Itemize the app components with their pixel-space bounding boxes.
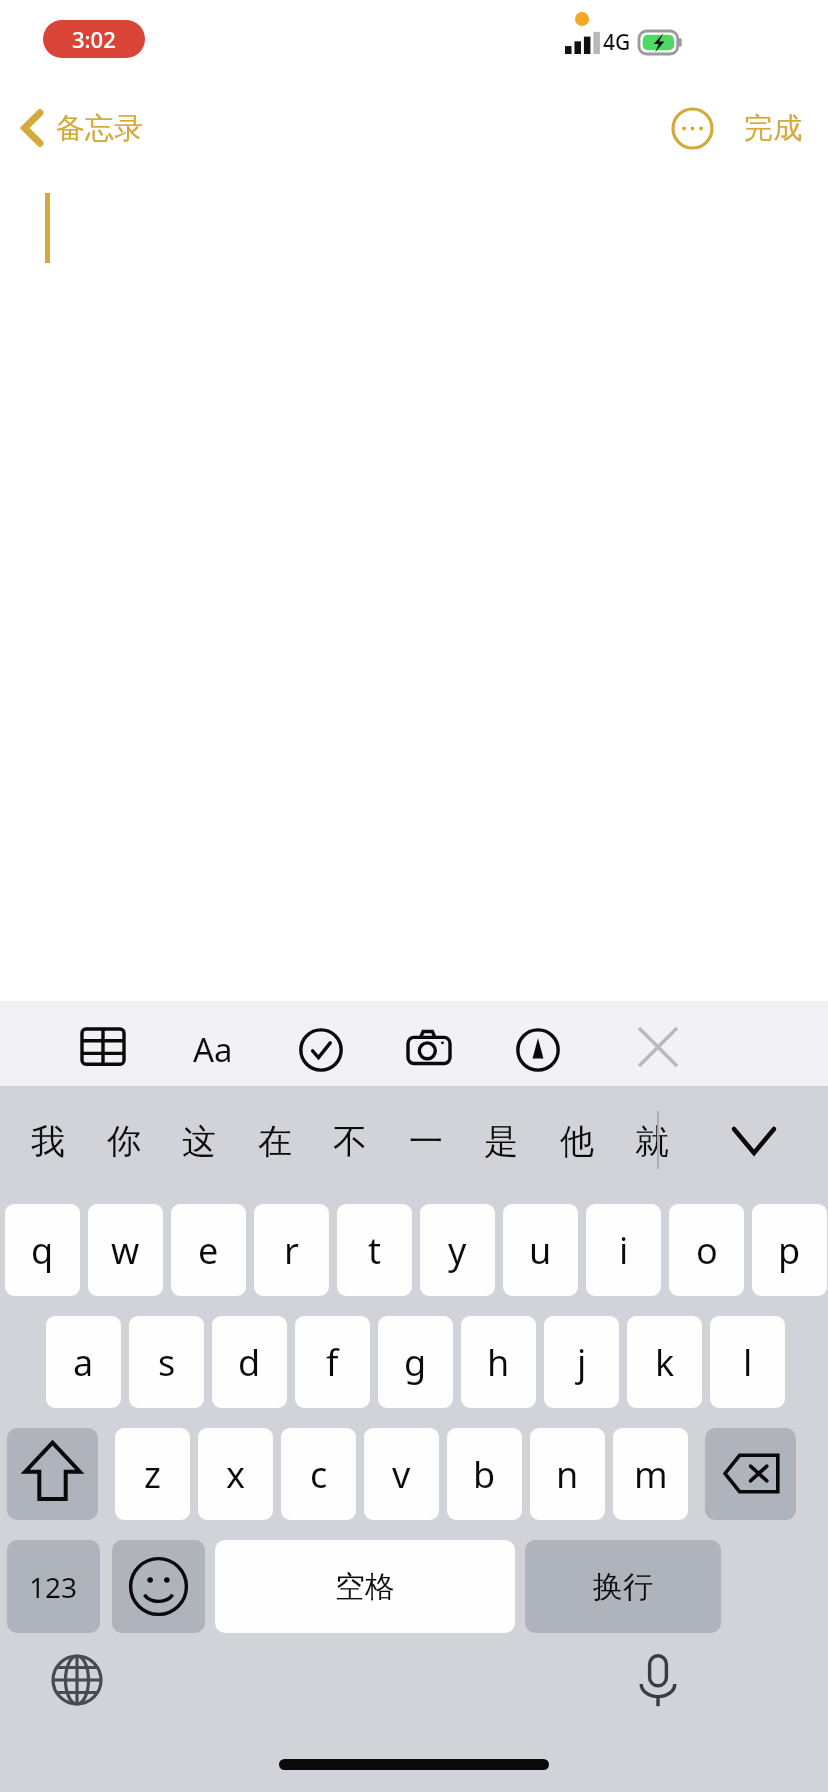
- button[interactable]: 在: [237, 1086, 313, 1196]
- staticText: u: [529, 1226, 552, 1275]
- button[interactable]: o: [669, 1204, 744, 1296]
- staticText: y: [448, 1226, 467, 1275]
- staticText: Aa: [193, 1027, 233, 1072]
- button[interactable]: m: [613, 1428, 688, 1520]
- staticText: o: [696, 1226, 718, 1275]
- staticText: 123: [29, 1568, 78, 1606]
- staticText: w: [111, 1226, 140, 1275]
- button[interactable]: a: [46, 1316, 121, 1408]
- staticText: l: [743, 1338, 753, 1387]
- button[interactable]: 你: [86, 1086, 162, 1196]
- button[interactable]: 就: [614, 1086, 690, 1196]
- staticText: 这: [182, 1120, 216, 1163]
- button[interactable]: y: [420, 1204, 495, 1296]
- button[interactable]: 123: [7, 1540, 100, 1633]
- button[interactable]: Shift: [7, 1428, 98, 1520]
- staticText: g: [404, 1338, 427, 1387]
- staticText: m: [634, 1450, 668, 1499]
- button[interactable]: Table: [75, 1022, 131, 1078]
- button[interactable]: Close keyboard: [632, 1021, 684, 1073]
- button[interactable]: 我: [10, 1086, 86, 1196]
- staticText: q: [31, 1226, 54, 1275]
- staticText: k: [655, 1338, 675, 1387]
- button[interactable]: Markup: [510, 1022, 566, 1078]
- staticText: t: [368, 1226, 381, 1275]
- button[interactable]: i: [586, 1204, 661, 1296]
- staticText: 空格: [335, 1568, 395, 1606]
- staticText: v: [392, 1450, 411, 1499]
- button[interactable]: Dictation: [620, 1643, 696, 1719]
- button[interactable]: v: [364, 1428, 439, 1520]
- button[interactable]: g: [378, 1316, 453, 1408]
- button[interactable]: 一: [388, 1086, 464, 1196]
- button[interactable]: q: [5, 1204, 80, 1296]
- button[interactable]: 备忘录: [14, 101, 151, 155]
- staticText: h: [487, 1338, 510, 1387]
- button[interactable]: 是: [463, 1086, 539, 1196]
- button[interactable]: Switch keyboard: [48, 1651, 106, 1709]
- staticText: f: [326, 1338, 339, 1387]
- button[interactable]: x: [198, 1428, 273, 1520]
- staticText: z: [144, 1450, 161, 1499]
- button[interactable]: Camera: [401, 1022, 457, 1078]
- staticText: c: [310, 1450, 328, 1499]
- staticText: 不: [333, 1120, 367, 1163]
- button[interactable]: 换行: [525, 1540, 721, 1633]
- staticText: 我: [31, 1120, 65, 1163]
- button[interactable]: u: [503, 1204, 578, 1296]
- staticText: b: [473, 1450, 496, 1499]
- button[interactable]: 不: [312, 1086, 388, 1196]
- staticText: x: [226, 1450, 246, 1499]
- button[interactable]: d: [212, 1316, 287, 1408]
- button[interactable]: Text format: [183, 1019, 243, 1079]
- button[interactable]: More options: [665, 101, 720, 156]
- button[interactable]: 完成: [740, 104, 806, 153]
- button[interactable]: e: [171, 1204, 246, 1296]
- button[interactable]: c: [281, 1428, 356, 1520]
- button[interactable]: 这: [161, 1086, 237, 1196]
- button[interactable]: s: [129, 1316, 204, 1408]
- staticText: 4G: [603, 28, 631, 57]
- button[interactable]: 空格: [215, 1540, 515, 1633]
- button[interactable]: Backspace: [705, 1428, 796, 1520]
- button[interactable]: t: [337, 1204, 412, 1296]
- button[interactable]: z: [115, 1428, 190, 1520]
- staticText: d: [238, 1338, 261, 1387]
- button[interactable]: h: [461, 1316, 536, 1408]
- button[interactable]: j: [544, 1316, 619, 1408]
- staticText: 备忘录: [56, 110, 143, 147]
- staticText: 在: [258, 1120, 292, 1163]
- staticText: 是: [484, 1120, 518, 1163]
- staticText: j: [577, 1338, 587, 1387]
- button[interactable]: Expand candidates: [655, 1086, 828, 1196]
- staticText: 他: [560, 1120, 594, 1163]
- staticText: i: [619, 1226, 629, 1275]
- button[interactable]: b: [447, 1428, 522, 1520]
- staticText: a: [73, 1338, 94, 1387]
- button[interactable]: r: [254, 1204, 329, 1296]
- button[interactable]: f: [295, 1316, 370, 1408]
- button[interactable]: Emoji: [112, 1540, 205, 1633]
- staticText: 一: [409, 1120, 443, 1163]
- staticText: s: [158, 1338, 176, 1387]
- staticText: 3:02: [72, 24, 116, 54]
- staticText: p: [778, 1226, 801, 1275]
- staticText: 完成: [744, 110, 802, 147]
- staticText: 你: [107, 1120, 141, 1163]
- button[interactable]: n: [530, 1428, 605, 1520]
- button[interactable]: p: [752, 1204, 827, 1296]
- staticText: n: [556, 1450, 579, 1499]
- staticText: e: [198, 1226, 219, 1275]
- button[interactable]: w: [88, 1204, 163, 1296]
- staticText: 换行: [593, 1568, 653, 1606]
- button[interactable]: 他: [539, 1086, 615, 1196]
- button[interactable]: l: [710, 1316, 785, 1408]
- button[interactable]: k: [627, 1316, 702, 1408]
- staticText: 就: [635, 1120, 669, 1163]
- button[interactable]: Checklist: [293, 1022, 349, 1078]
- staticText: r: [284, 1226, 299, 1275]
